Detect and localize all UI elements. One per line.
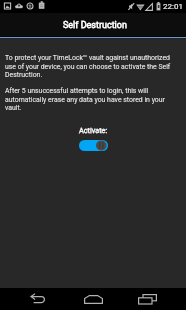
staticText: Activate: <box>79 126 108 135</box>
staticText: 22:01 <box>163 2 183 11</box>
button[interactable]: Back <box>30 288 78 310</box>
staticText: Self Destruction <box>63 20 127 31</box>
staticText: To protect your TimeLock™ vault against … <box>5 54 176 78</box>
button[interactable]: Home <box>69 288 117 310</box>
button[interactable]: Recent apps <box>109 288 157 310</box>
staticText: After 5 unsuccessful attempts to login, … <box>5 87 176 111</box>
button[interactable] <box>79 140 108 151</box>
